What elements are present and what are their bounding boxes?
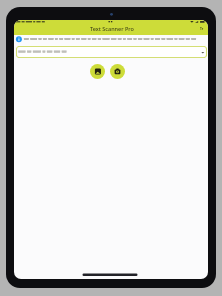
button[interactable] — [16, 46, 207, 58]
button[interactable]: Tr — [200, 27, 206, 32]
button[interactable] — [110, 64, 125, 79]
button[interactable] — [90, 64, 105, 79]
staticText: Text Scanner Pro — [90, 25, 134, 32]
staticText: Tr — [200, 27, 204, 31]
